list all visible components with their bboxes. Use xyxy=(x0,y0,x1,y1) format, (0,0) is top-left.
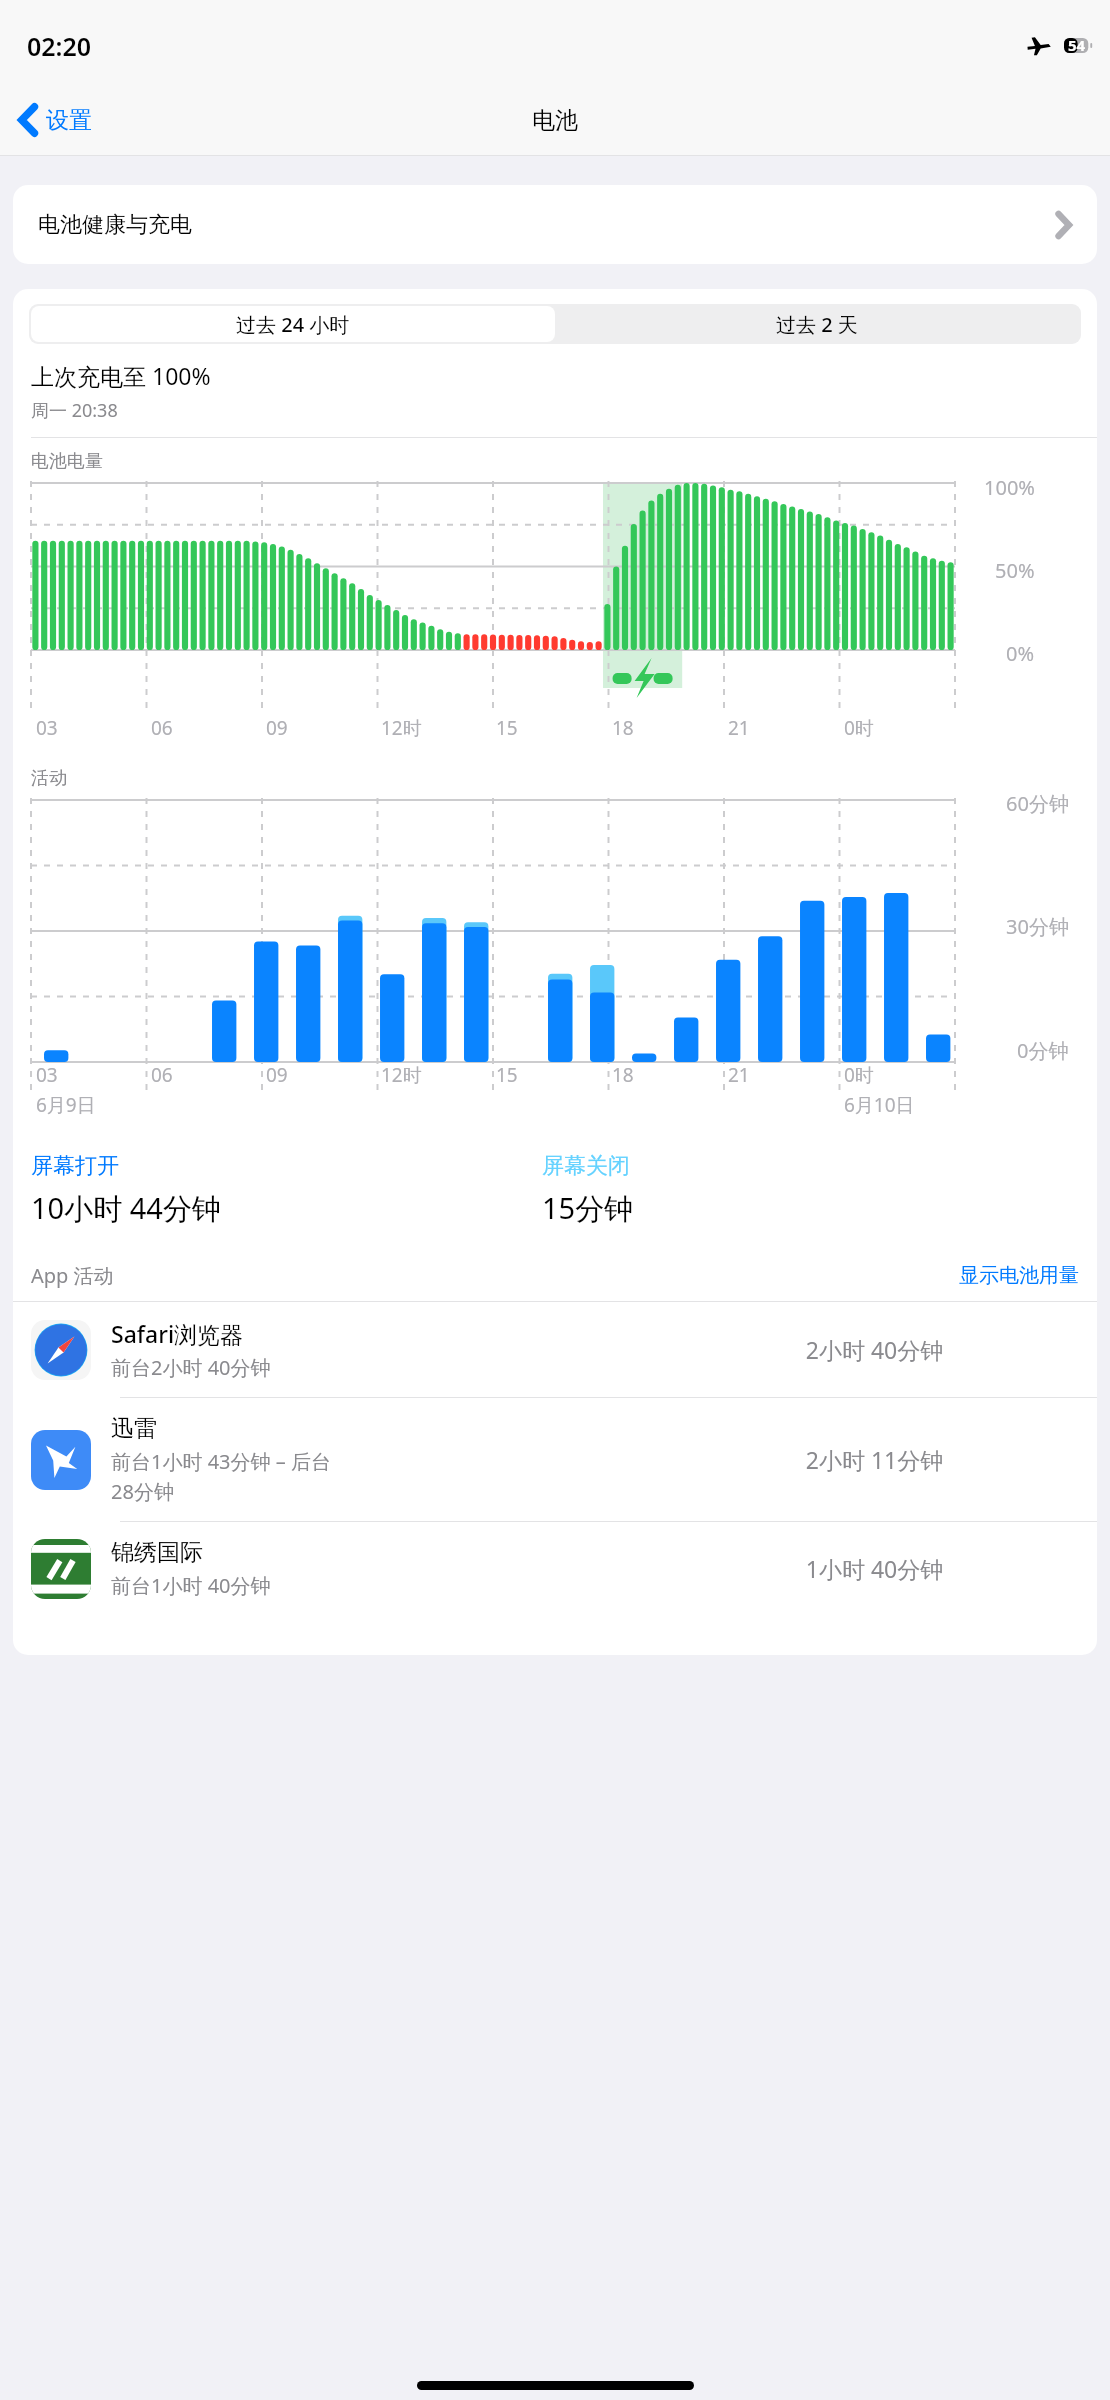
staticText: 迅雷 xyxy=(111,1414,157,1443)
button[interactable]: 电池健康与充电 xyxy=(13,185,1097,264)
staticText: 06 xyxy=(151,1062,173,1088)
staticText: 60分钟 xyxy=(1006,790,1069,817)
button[interactable]: 屏幕关闭 xyxy=(542,1152,1079,1228)
staticText: 06 xyxy=(151,715,173,741)
staticText: 0时 xyxy=(844,1062,874,1088)
staticText: Safari浏览器 xyxy=(111,1318,244,1349)
staticText: 6月10日 xyxy=(844,1092,915,1118)
staticText: 屏幕打开 xyxy=(31,1152,119,1180)
staticText: 50% xyxy=(995,557,1035,584)
staticText: 21 xyxy=(728,715,750,741)
button[interactable]: Safari浏览器 xyxy=(13,1302,1097,1397)
staticText: 0% xyxy=(1006,640,1035,667)
other: Battery Health and Charging xyxy=(1057,213,1070,237)
staticText: 15分钟 xyxy=(542,1188,634,1228)
button[interactable]: 屏幕打开 xyxy=(31,1152,542,1228)
staticText: 电池 xyxy=(532,106,578,135)
button[interactable]: 迅雷 xyxy=(13,1398,1097,1521)
staticText: 活动 xyxy=(31,767,67,790)
button[interactable]: 过去 2 天 xyxy=(555,306,1079,342)
staticText: 12时 xyxy=(381,715,422,741)
staticText: 03 xyxy=(36,1062,58,1088)
staticText: 15 xyxy=(496,715,518,741)
staticText: 1小时 40分钟 xyxy=(668,1553,1081,1584)
staticText: 上次充电至 100% xyxy=(31,360,211,391)
button[interactable]: 锦绣国际 xyxy=(13,1522,1097,1615)
staticText: 2小时 11分钟 xyxy=(668,1444,1081,1475)
staticText: 电池健康与充电 xyxy=(38,211,192,239)
staticText: 锦绣国际 xyxy=(111,1538,203,1567)
staticText: App 活动 xyxy=(31,1262,114,1289)
staticText: 6月9日 xyxy=(36,1092,96,1118)
staticText: 30分钟 xyxy=(1006,913,1069,940)
staticText: 02:20 xyxy=(27,29,92,63)
staticText: 过去 24 小时 xyxy=(236,311,350,338)
staticText: 28分钟 xyxy=(111,1478,174,1505)
button[interactable]: 过去 24 小时 xyxy=(31,306,555,342)
staticText: 12时 xyxy=(381,1062,422,1088)
staticText: 设置 xyxy=(46,106,92,135)
staticText: 54 xyxy=(1068,35,1086,55)
staticText: 0分钟 xyxy=(1017,1037,1069,1064)
staticText: 前台1小时 43分钟 – 后台 xyxy=(111,1448,331,1475)
staticText: 电池电量 xyxy=(31,450,103,473)
staticText: 前台1小时 40分钟 xyxy=(111,1572,271,1599)
staticText: 18 xyxy=(612,715,634,741)
staticText: 09 xyxy=(266,715,288,741)
staticText: 前台2小时 40分钟 xyxy=(111,1354,271,1381)
staticText: 100% xyxy=(984,474,1035,501)
staticText: 15 xyxy=(496,1062,518,1088)
staticText: 21 xyxy=(728,1062,750,1088)
staticText: 18 xyxy=(612,1062,634,1088)
button[interactable]: 显示电池用量 xyxy=(959,1263,1079,1288)
staticText: 屏幕关闭 xyxy=(542,1152,630,1180)
staticText: 周一 20:38 xyxy=(31,398,118,423)
staticText: 10小时 44分钟 xyxy=(31,1188,221,1228)
staticText: 显示电池用量 xyxy=(959,1263,1079,1288)
staticText: 09 xyxy=(266,1062,288,1088)
staticText: 0时 xyxy=(844,715,874,741)
button[interactable]: 设置 xyxy=(12,97,100,143)
staticText: 2小时 40分钟 xyxy=(668,1334,1081,1365)
staticText: 过去 2 天 xyxy=(776,311,858,338)
staticText: 03 xyxy=(36,715,58,741)
